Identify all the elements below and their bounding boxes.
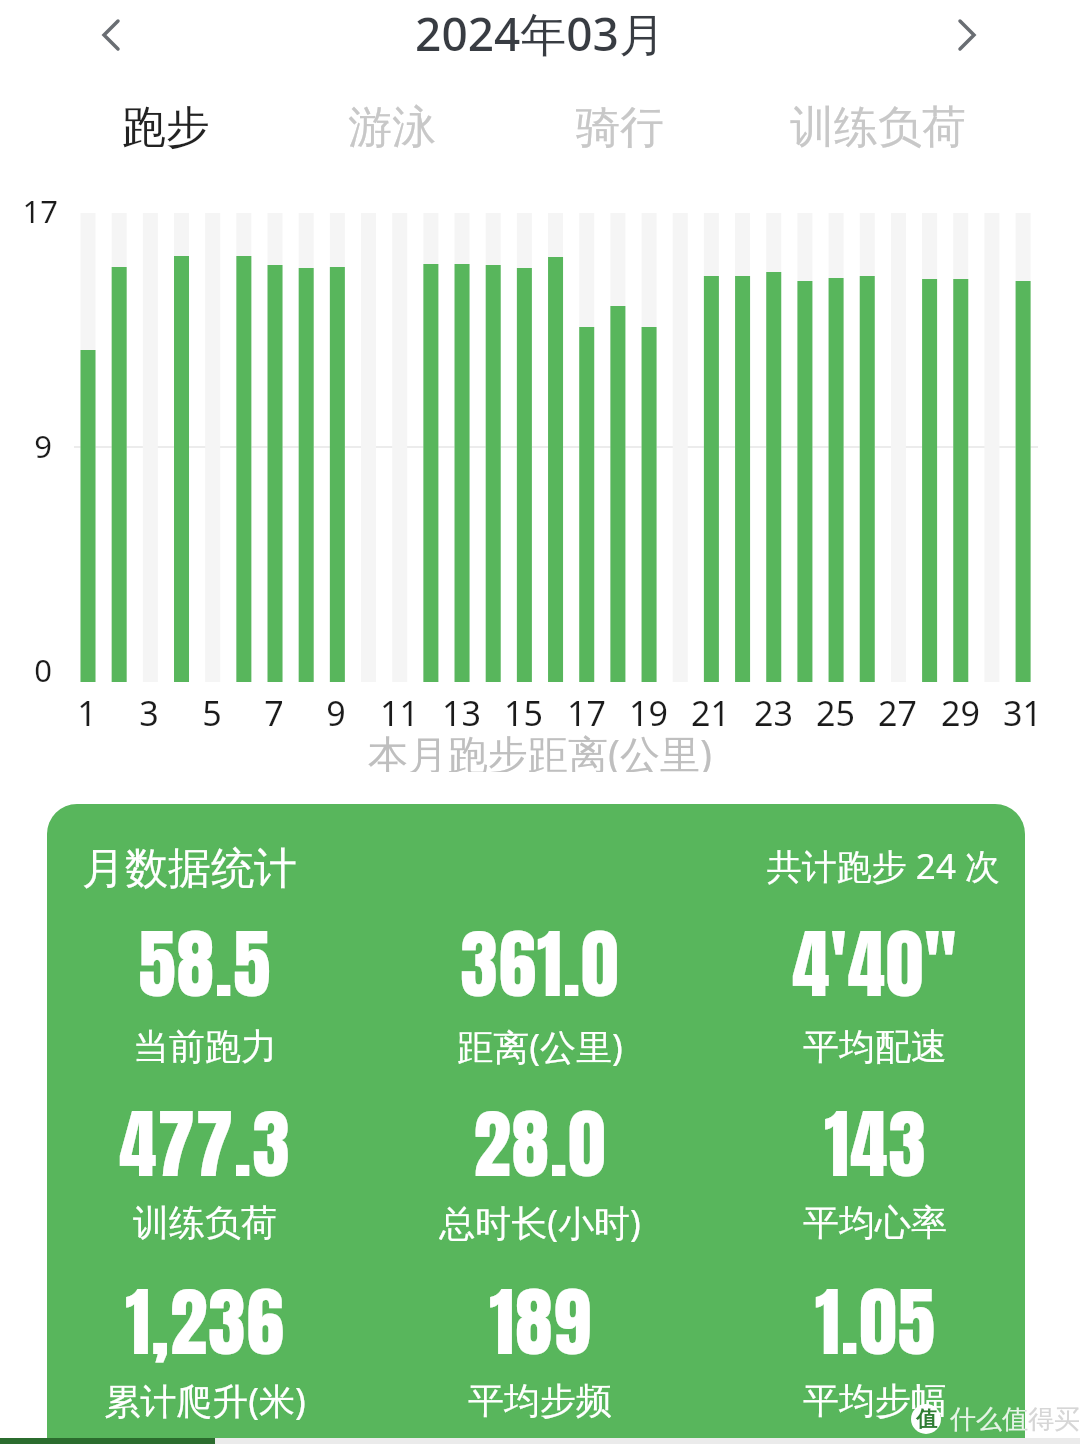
staticText: 9 (326, 690, 346, 734)
staticText: 189 (489, 1266, 592, 1379)
staticText: 477.3 (119, 1088, 291, 1201)
staticText: 当前跑力 (133, 1024, 277, 1069)
button[interactable]: 游泳 (312, 100, 472, 154)
staticText: 总时长(小时) (439, 1198, 641, 1247)
staticText: 1 (77, 690, 97, 734)
staticText: 平均步频 (468, 1378, 612, 1423)
staticText: 29 (941, 690, 980, 734)
staticText: 19 (629, 690, 668, 734)
staticText: 13 (442, 690, 481, 734)
staticText: 骑行 (576, 100, 664, 154)
staticText: 7 (264, 690, 284, 734)
staticText: 共计跑步 24 次 (766, 842, 1000, 888)
staticText: 累计爬升(米) (104, 1376, 306, 1425)
staticText: 距离(公里) (457, 1022, 623, 1071)
staticText: 5 (202, 690, 222, 734)
staticText: 21 (691, 690, 730, 734)
staticText: 9 (34, 425, 52, 467)
staticText: 4'40" (792, 908, 958, 1021)
staticText: 15 (504, 690, 543, 734)
button[interactable] (84, 8, 138, 62)
staticText: 17 (567, 690, 606, 734)
staticText: 28.0 (473, 1088, 607, 1201)
button[interactable]: 训练负荷 (768, 100, 988, 154)
staticText: 17 (22, 190, 58, 232)
staticText: 平均步幅 (803, 1378, 947, 1423)
staticText: 平均配速 (803, 1024, 947, 1069)
staticText: 2024年03月 (415, 2, 665, 62)
staticText: 训练负荷 (790, 100, 966, 154)
staticText: 游泳 (348, 100, 436, 154)
staticText: 143 (824, 1088, 927, 1201)
button[interactable]: 跑步 (86, 100, 246, 154)
staticText: 0 (34, 649, 52, 691)
staticText: 58.5 (138, 908, 272, 1021)
staticText: 月数据统计 (82, 842, 297, 892)
staticText: 跑步 (122, 100, 210, 154)
staticText: 什么值得买 (950, 1403, 1025, 1436)
staticText: 训练负荷 (133, 1200, 277, 1245)
staticText: 值 (916, 1406, 937, 1432)
staticText: 本月跑步距离(公里) (368, 726, 712, 772)
staticText: 11 (380, 690, 419, 734)
staticText: 27 (878, 690, 917, 734)
staticText: 1,236 (125, 1266, 285, 1379)
staticText: 31 (1003, 690, 1042, 734)
staticText: 1.05 (815, 1266, 936, 1379)
staticText: 25 (816, 690, 855, 734)
button[interactable] (940, 8, 994, 62)
staticText: 361.0 (460, 908, 620, 1021)
button[interactable]: 骑行 (540, 100, 700, 154)
staticText: 23 (754, 690, 793, 734)
staticText: 平均心率 (803, 1200, 947, 1245)
staticText: 3 (139, 690, 159, 734)
